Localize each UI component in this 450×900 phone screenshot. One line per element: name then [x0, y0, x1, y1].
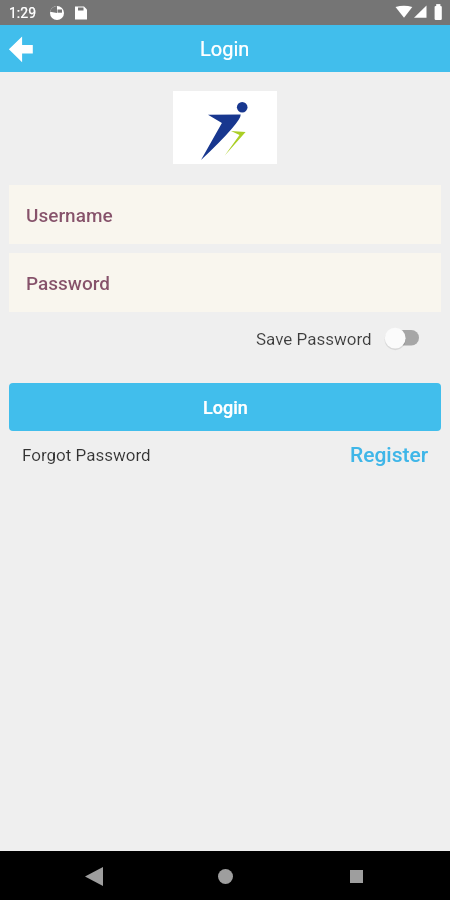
staticText: Login: [203, 397, 248, 418]
button[interactable]: Back: [70, 852, 118, 900]
staticText: Username: [26, 204, 113, 226]
staticText: 1:29: [9, 5, 36, 21]
button[interactable]: Save Password toggle: [385, 328, 419, 350]
button[interactable]: Password: [9, 253, 441, 312]
staticText: Password: [26, 272, 110, 294]
button[interactable]: Back: [0, 27, 44, 71]
staticText: Save Password: [256, 329, 372, 349]
button[interactable]: Register: [350, 443, 429, 468]
button[interactable]: Recent apps: [332, 852, 380, 900]
button[interactable]: Home: [201, 852, 249, 900]
button[interactable]: Username: [9, 185, 441, 244]
staticText: Login: [200, 37, 250, 60]
button[interactable]: Forgot Password: [22, 445, 151, 465]
button[interactable]: Login: [9, 383, 441, 431]
